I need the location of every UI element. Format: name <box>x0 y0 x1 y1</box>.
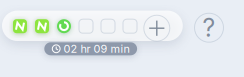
button[interactable]: Empty slot <box>101 19 115 33</box>
button[interactable]: Add <box>144 15 170 41</box>
staticText: 02 hr 09 min <box>64 42 130 55</box>
button[interactable]: App <box>35 19 49 33</box>
button[interactable]: Empty slot <box>79 19 93 33</box>
button[interactable]: App <box>13 19 27 33</box>
staticText: ? <box>202 13 215 43</box>
button[interactable]: Loading app <box>57 19 71 33</box>
button[interactable]: Empty slot <box>123 19 137 33</box>
button[interactable]: Help <box>194 13 223 42</box>
